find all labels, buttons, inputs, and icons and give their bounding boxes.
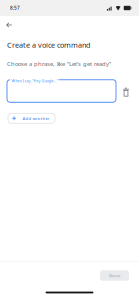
staticText: Create a voice command bbox=[7, 40, 90, 50]
staticText: Add another bbox=[23, 115, 50, 121]
button[interactable]: Add another bbox=[8, 113, 55, 123]
staticText: Choose a phrase, like “Let’s get ready” bbox=[7, 60, 111, 68]
button[interactable]: Delete bbox=[116, 80, 136, 102]
staticText: When I say, “Hey Google...” bbox=[11, 78, 57, 83]
button[interactable]: Back bbox=[3, 16, 15, 34]
staticText: Done bbox=[109, 273, 120, 278]
button[interactable]: Done bbox=[100, 270, 129, 281]
staticText: 8:57 bbox=[10, 5, 20, 11]
